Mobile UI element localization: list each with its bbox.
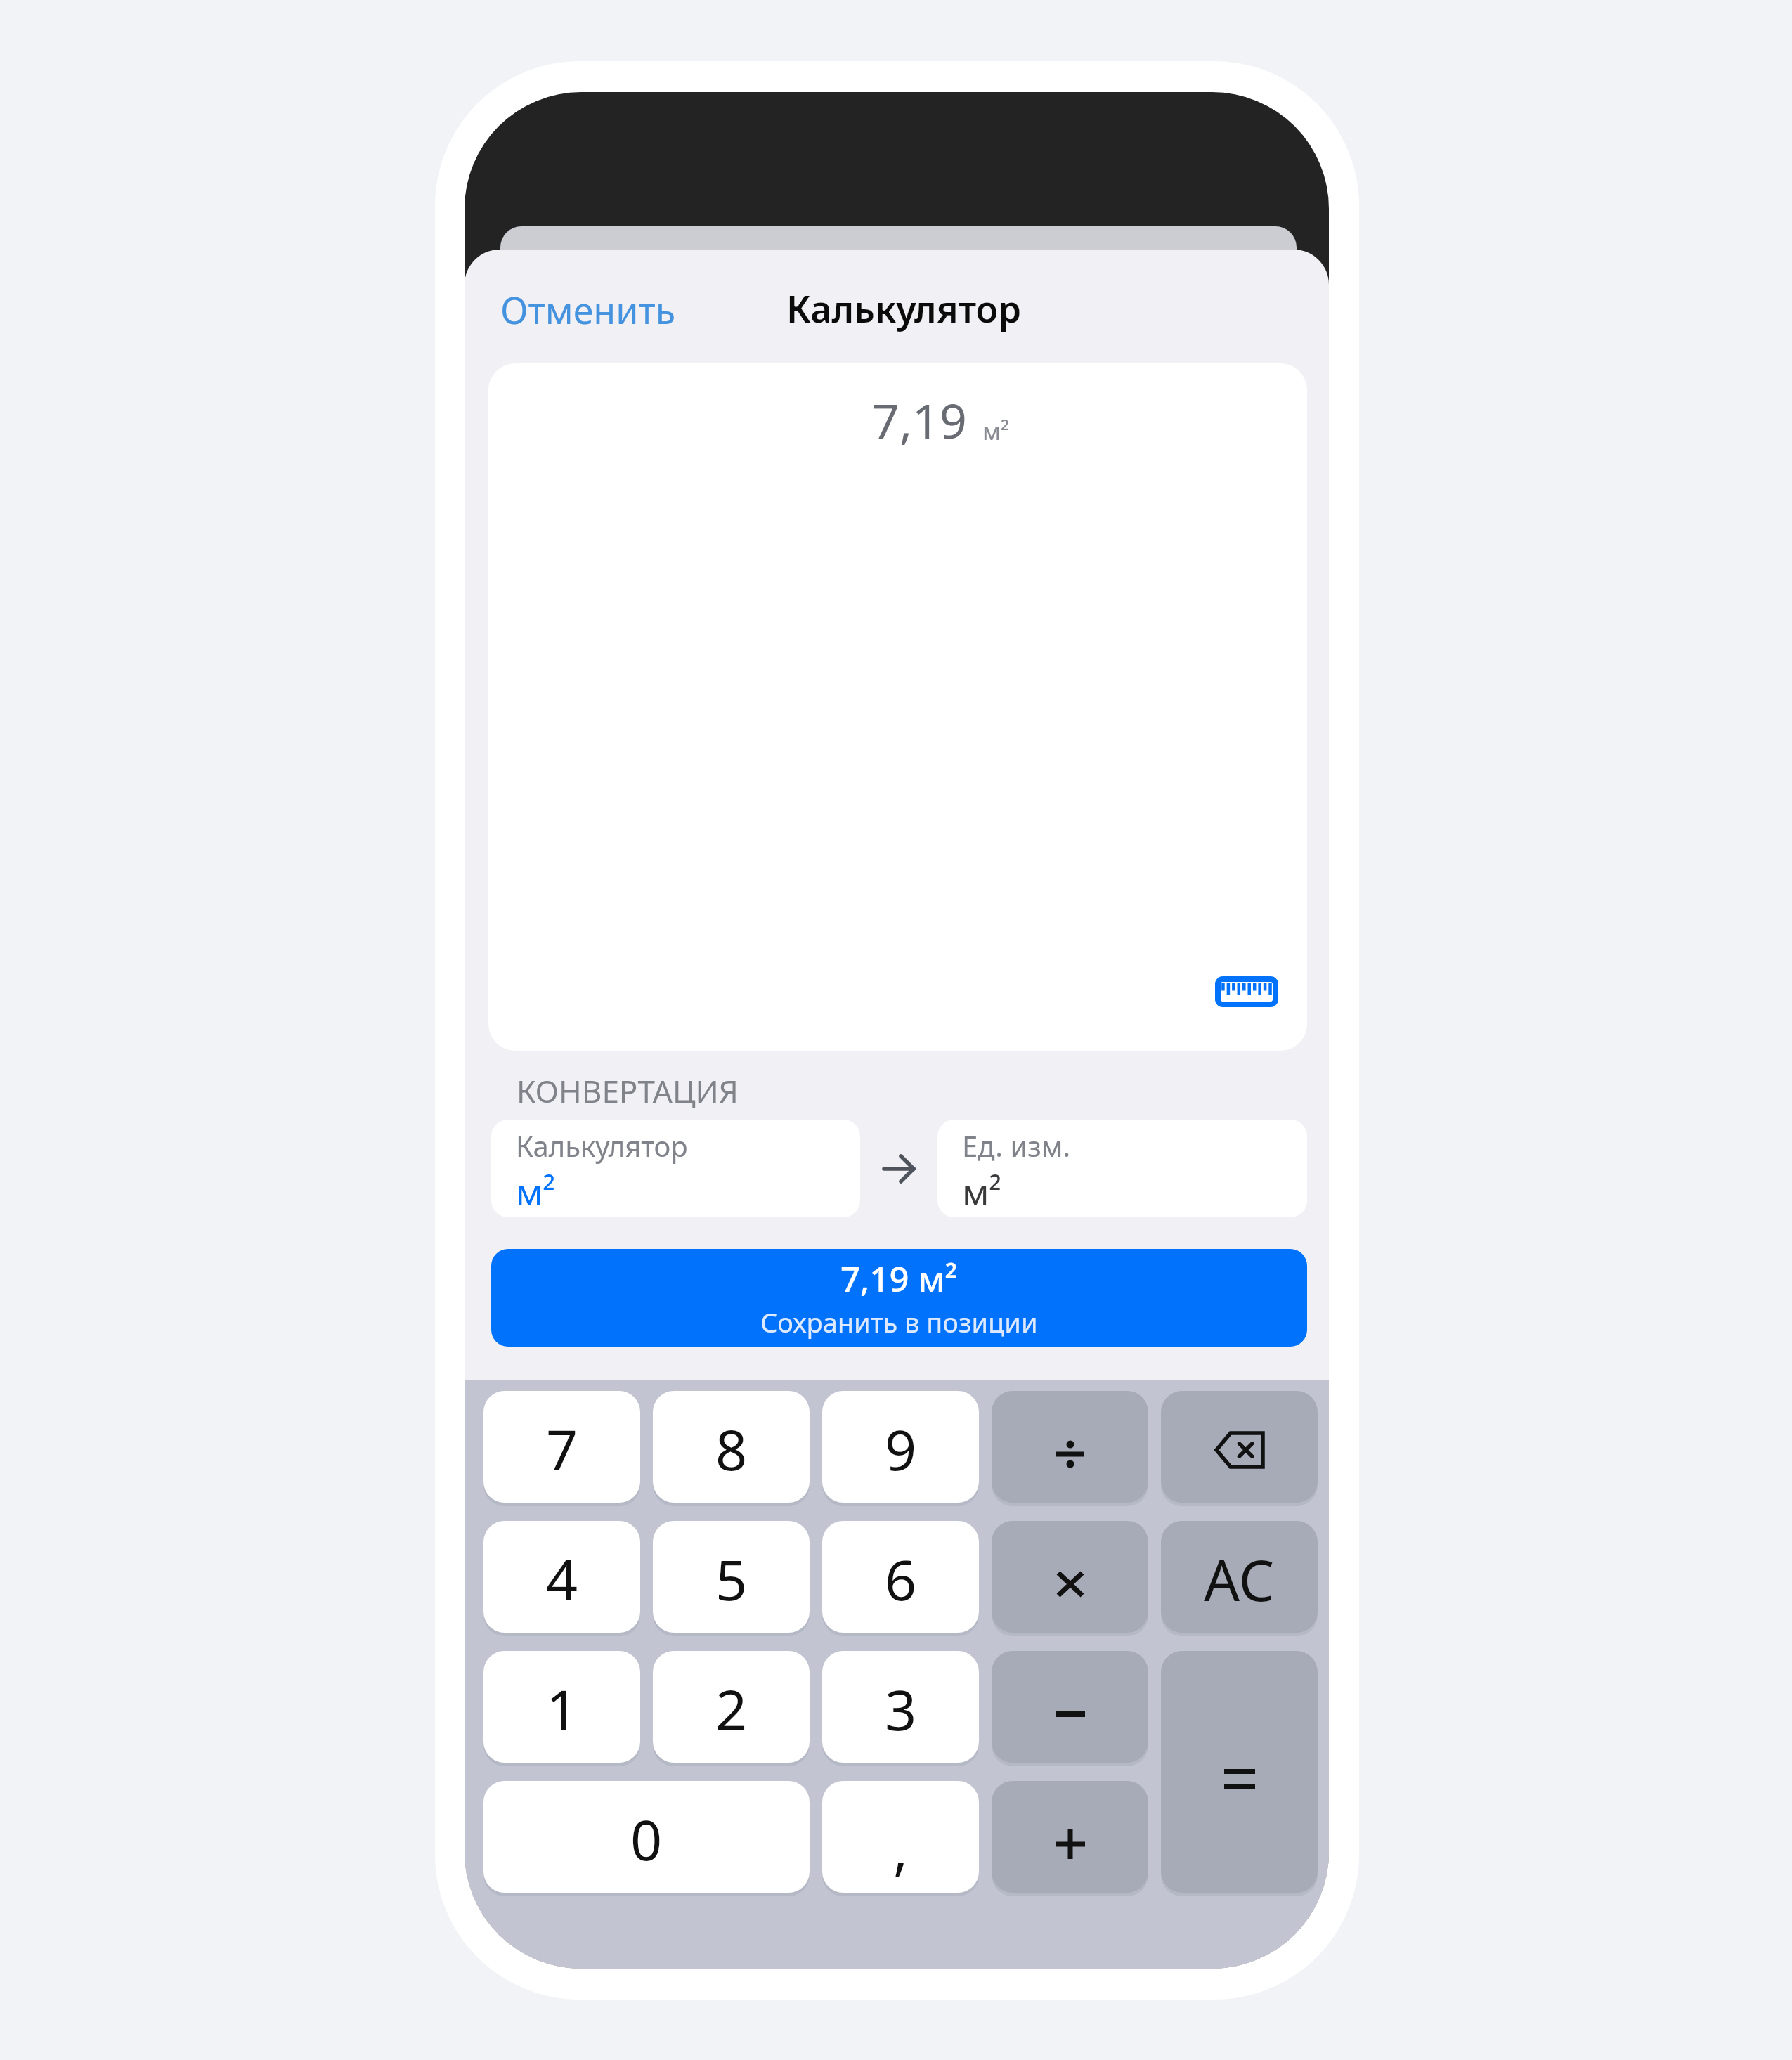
staticText: AC [1204, 1541, 1275, 1617]
staticText: Отменить [500, 285, 676, 335]
staticText: Калькулятор [786, 283, 1021, 333]
other: Равно [1224, 1769, 1255, 1789]
other: Удалить [1214, 1431, 1265, 1469]
button[interactable]: AC [1161, 1521, 1318, 1633]
button[interactable]: 9 [822, 1391, 979, 1503]
staticText: 0 [630, 1801, 663, 1877]
button[interactable]: Запятая [822, 1781, 979, 1893]
staticText: 7,19 м² [840, 1255, 958, 1302]
button[interactable]: Минус [992, 1651, 1148, 1763]
staticText: 2 [715, 1671, 748, 1747]
staticText: , [893, 1811, 908, 1886]
button[interactable]: Ед. изм. [937, 1120, 1307, 1217]
button[interactable]: 2 [653, 1651, 810, 1763]
staticText: м² [962, 1167, 1001, 1215]
button[interactable]: Калькулятор [491, 1120, 860, 1217]
other: Минус [1056, 1710, 1085, 1718]
staticText: 6 [885, 1541, 917, 1617]
button[interactable]: Умножить [992, 1521, 1148, 1633]
button[interactable]: Равно [1161, 1651, 1318, 1893]
button[interactable]: 7 [483, 1391, 640, 1503]
button[interactable]: Плюс [992, 1781, 1148, 1893]
staticText: м² [982, 415, 1010, 447]
button[interactable]: Отменить [491, 275, 686, 344]
staticText: 9 [885, 1411, 917, 1487]
other: Разделить [1056, 1439, 1085, 1469]
other: Умножить [1057, 1572, 1084, 1597]
button[interactable]: 1 [483, 1651, 640, 1763]
staticText: 8 [715, 1411, 748, 1487]
staticText: 1 [546, 1671, 578, 1747]
staticText: м² [516, 1167, 555, 1215]
button[interactable]: 3 [822, 1651, 979, 1763]
staticText: 3 [885, 1671, 917, 1747]
button[interactable]: 4 [483, 1521, 640, 1633]
button[interactable]: Разделить [992, 1391, 1148, 1503]
staticText: Калькулятор [516, 1127, 688, 1165]
button[interactable]: 7,19 м² [491, 1249, 1307, 1347]
button[interactable]: 6 [822, 1521, 979, 1633]
button[interactable]: Удалить [1161, 1391, 1318, 1503]
button[interactable]: 5 [653, 1521, 810, 1633]
staticText: Ед. изм. [962, 1127, 1071, 1165]
staticText: 7,19 [872, 387, 967, 453]
button[interactable]: 0 [483, 1781, 810, 1893]
staticText: КОНВЕРТАЦИЯ [517, 1070, 739, 1112]
staticText: 5 [715, 1541, 748, 1617]
staticText: Сохранить в позиции [760, 1304, 1038, 1340]
staticText: 4 [546, 1541, 578, 1617]
staticText: 7 [546, 1411, 578, 1487]
button[interactable]: 8 [653, 1391, 810, 1503]
other: Плюс [1056, 1829, 1085, 1859]
button[interactable]: Единицы измерения [1218, 979, 1275, 1004]
